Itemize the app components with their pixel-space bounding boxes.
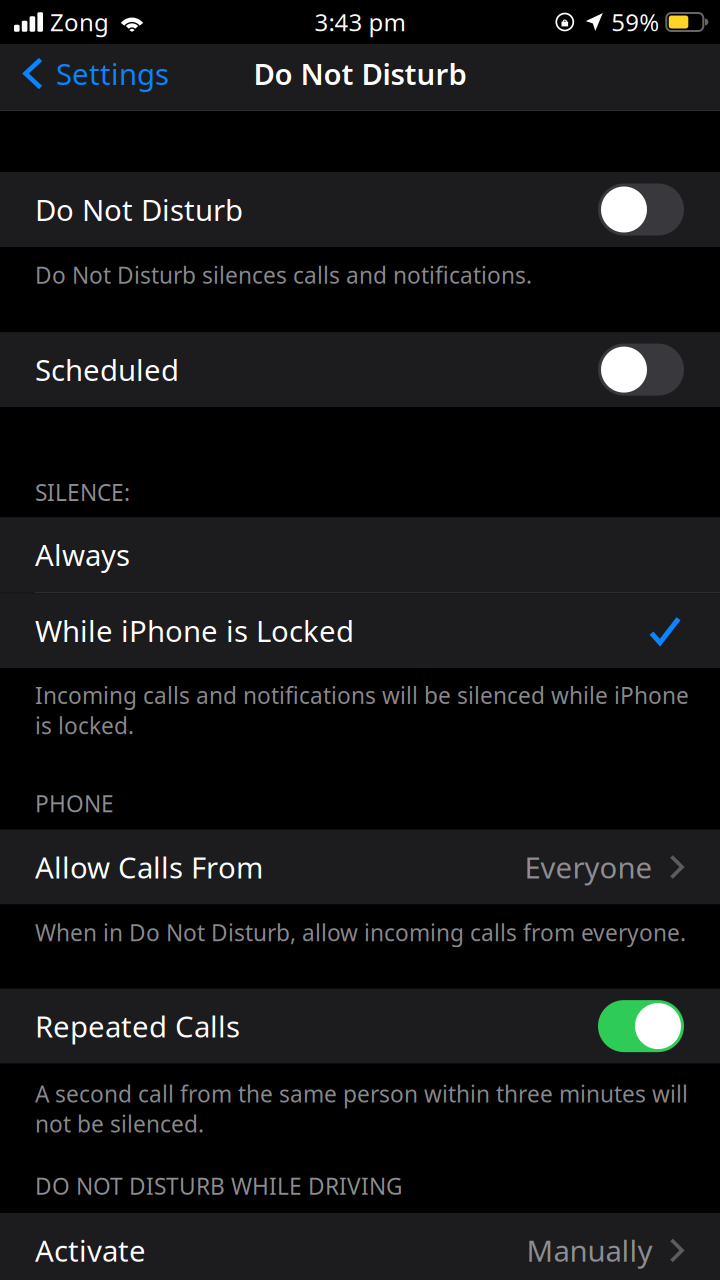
button[interactable]: Scheduled xyxy=(0,332,720,407)
staticText: Activate xyxy=(35,1231,146,1270)
staticText: SILENCE: xyxy=(35,477,130,507)
button[interactable]: Allow Calls From xyxy=(0,829,720,904)
staticText: 3:43 pm xyxy=(314,6,405,38)
button[interactable]: Settings xyxy=(0,40,181,107)
staticText: Everyone xyxy=(524,847,652,886)
staticText: Zong xyxy=(50,6,109,38)
staticText: PHONE xyxy=(35,788,114,818)
staticText: Do Not Disturb xyxy=(253,54,466,93)
staticText: When in Do Not Disturb, allow incoming c… xyxy=(35,917,686,948)
staticText: Do Not Disturb xyxy=(35,190,243,229)
button[interactable]: Repeated Calls xyxy=(0,989,720,1064)
button[interactable]: Activate xyxy=(0,1213,720,1280)
staticText: Incoming calls and notifications will be… xyxy=(35,680,689,740)
staticText: Manually xyxy=(526,1231,652,1270)
staticText: Repeated Calls xyxy=(35,1007,240,1046)
staticText: Always xyxy=(35,535,130,574)
staticText: Settings xyxy=(56,54,169,93)
staticText: 59% xyxy=(611,6,659,38)
staticText: While iPhone is Locked xyxy=(35,611,354,650)
button[interactable]: Always xyxy=(0,517,720,592)
staticText: DO NOT DISTURB WHILE DRIVING xyxy=(35,1171,403,1201)
staticText: A second call from the same person withi… xyxy=(35,1079,688,1139)
staticText: Scheduled xyxy=(35,350,179,389)
staticText: Allow Calls From xyxy=(35,847,263,886)
button[interactable]: While iPhone is Locked xyxy=(0,593,720,668)
staticText: Do Not Disturb silences calls and notifi… xyxy=(35,260,532,290)
button[interactable]: Do Not Disturb xyxy=(0,172,720,247)
